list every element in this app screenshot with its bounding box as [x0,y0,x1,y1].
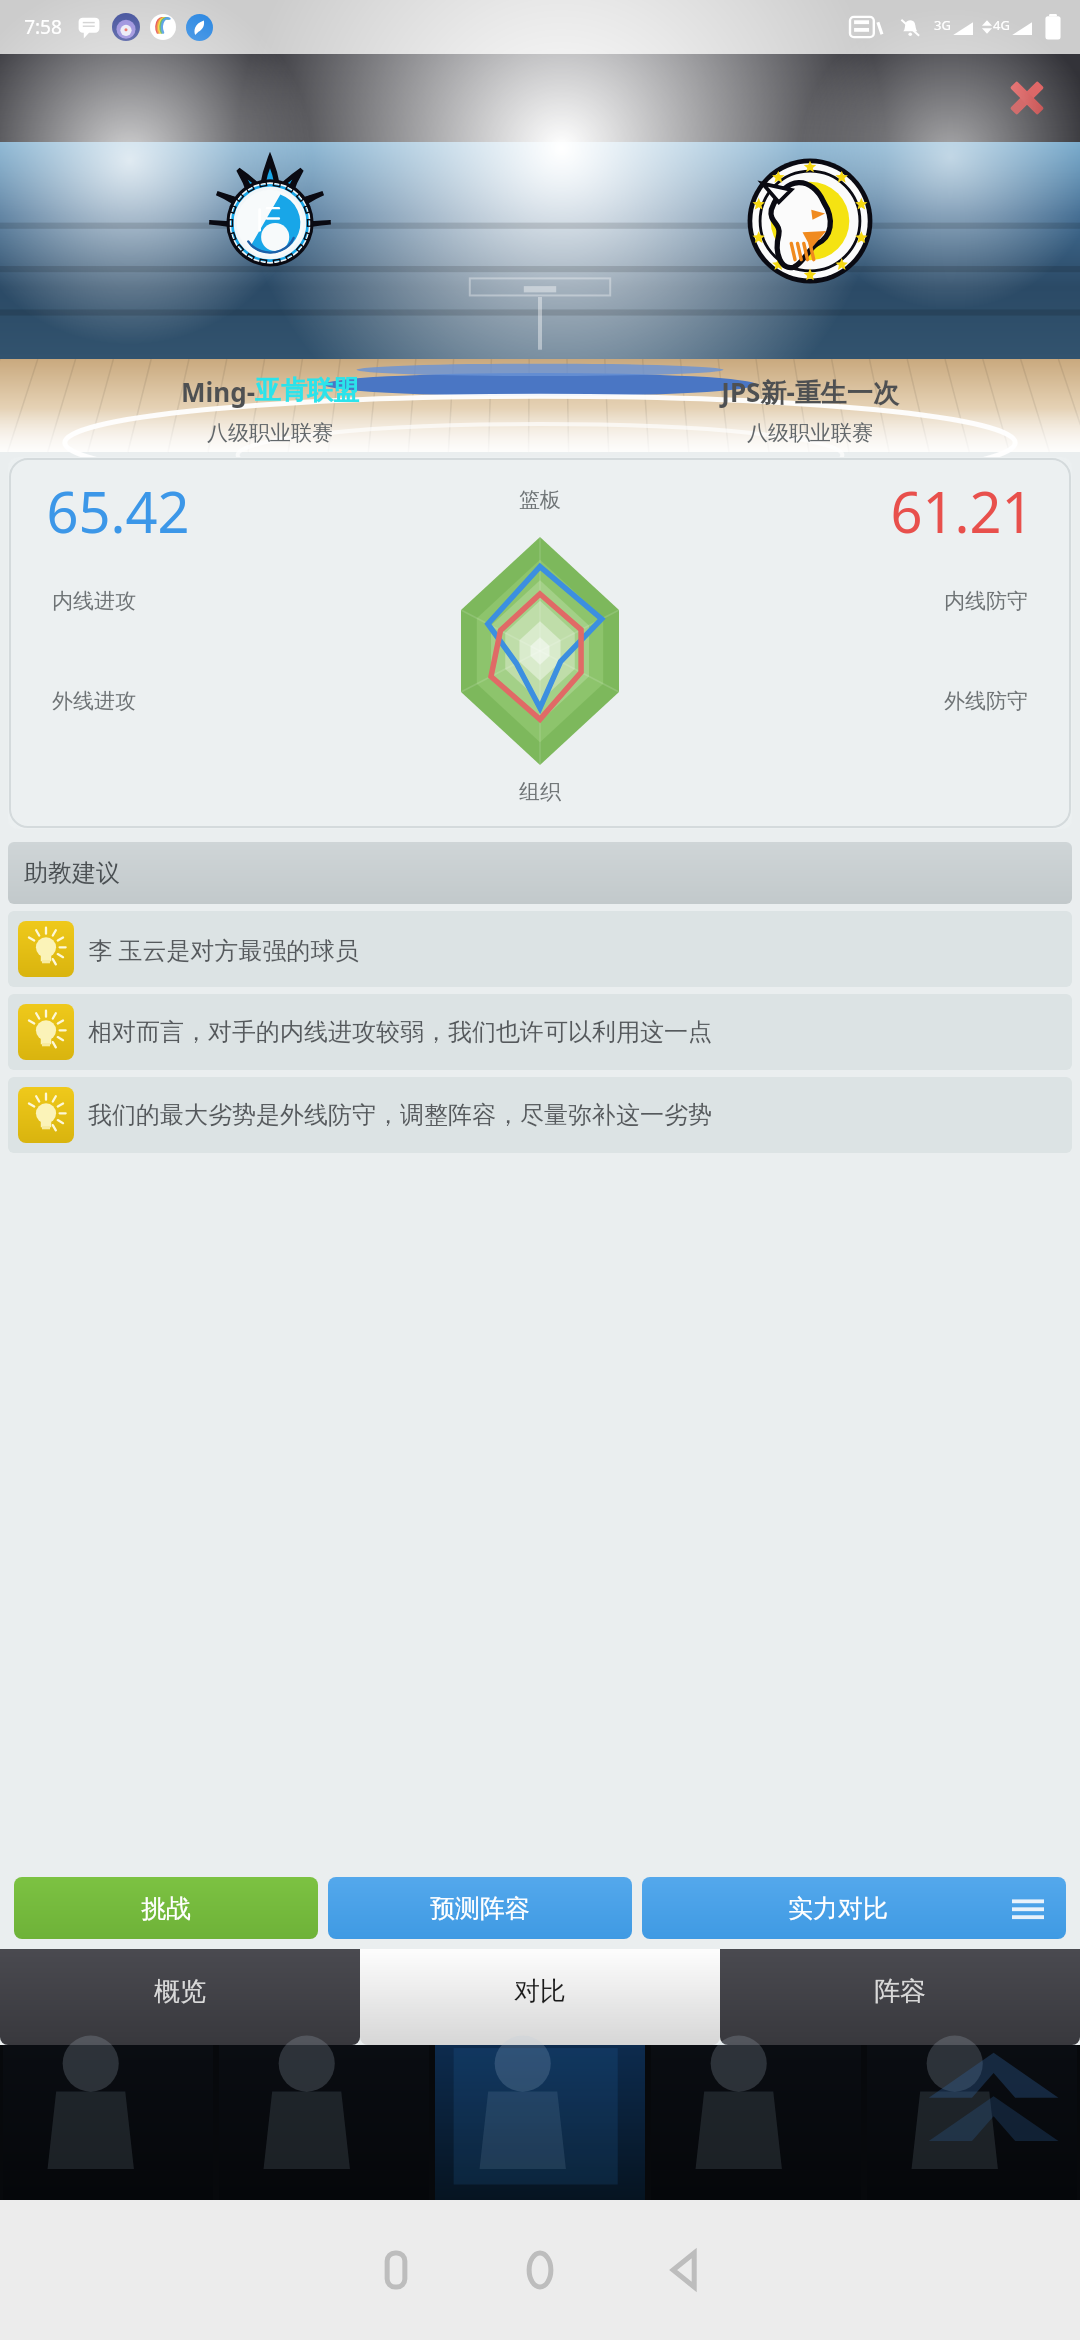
staticText: 八级职业联赛 [747,420,873,446]
button[interactable]: 助教建议 [8,842,1072,904]
button[interactable]: 相对而言，对手的内线进攻较弱，我们也许可以利用这一点 [8,994,1072,1070]
staticText: 八级职业联赛 [207,420,333,446]
staticText: 概览 [154,1975,206,2008]
staticText: 61.21 [890,473,1034,549]
button[interactable]: 李 玉云是对方最强的球员 [8,911,1072,987]
button[interactable]: 预测阵容 [328,1877,632,1939]
staticText: 相对而言，对手的内线进攻较弱，我们也许可以利用这一点 [88,1017,712,1047]
staticText: 挑战 [141,1893,191,1924]
button[interactable]: 我们的最大劣势是外线防守，调整阵容，尽量弥补这一劣势 [8,1077,1072,1153]
staticText: JPS新-重生一次 [721,374,899,410]
button[interactable]: 对比 [360,1949,720,2045]
button[interactable]: 挑战 [14,1877,318,1939]
staticText: 对比 [514,1975,566,2008]
staticText: 内线防守 [944,588,1028,614]
staticText: 内线进攻 [52,588,136,614]
staticText: 外线防守 [944,688,1028,714]
button[interactable]: 概览 [0,1949,360,2045]
staticText: 助教建议 [24,858,120,888]
staticText: 外线进攻 [52,688,136,714]
staticText: 4G [993,16,1010,34]
button[interactable]: 阵容 [720,1949,1080,2045]
button[interactable]: Home [497,2227,583,2313]
staticText: 亚肯联盟 [255,374,359,407]
staticText: 阵容 [874,1975,926,2008]
staticText: 篮板 [519,487,561,513]
staticText: Ming- [181,374,255,409]
staticText: 7:58 [24,14,62,40]
staticText: 3G [934,16,951,34]
staticText: 组织 [519,779,561,805]
staticText: 65.42 [46,473,190,549]
button[interactable]: Back [641,2227,727,2313]
button[interactable]: Close [996,67,1058,129]
staticText: 实力对比 [788,1893,888,1924]
staticText: 我们的最大劣势是外线防守，调整阵容，尽量弥补这一劣势 [88,1100,712,1130]
button[interactable]: 实力对比 [642,1877,1066,1939]
staticText: 李 玉云是对方最强的球员 [88,933,359,966]
button[interactable]: Recents [353,2227,439,2313]
staticText: 预测阵容 [430,1893,530,1924]
